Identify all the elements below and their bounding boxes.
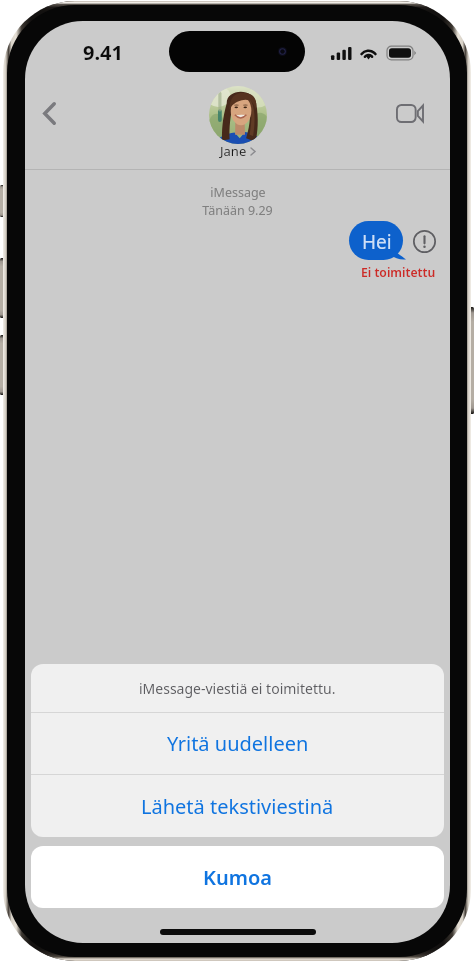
button[interactable]: Message not delivered [400,217,448,265]
staticText: Tänään 9.29 [202,202,273,219]
staticText: 9.41 [83,39,123,66]
button[interactable]: Lähetä tekstiviestinä [31,775,444,837]
button[interactable]: FaceTime video call [388,91,432,135]
staticText: Hei [362,229,392,255]
staticText: Ei toimitettu [361,264,436,281]
staticText: Kumoa [203,864,272,891]
button[interactable]: Jane profile [209,86,267,144]
staticText: Jane [220,142,247,160]
button[interactable]: Hei [349,221,403,260]
button[interactable]: Kumoa [31,846,444,908]
staticText: Lähetä tekstiviestinä [141,793,334,820]
staticText: Yritä uudelleen [167,730,309,757]
button[interactable]: Yritä uudelleen [31,713,444,774]
staticText: iMessage [210,184,266,201]
button[interactable]: Back [27,91,71,135]
staticText: iMessage-viestiä ei toimitettu. [139,679,336,698]
